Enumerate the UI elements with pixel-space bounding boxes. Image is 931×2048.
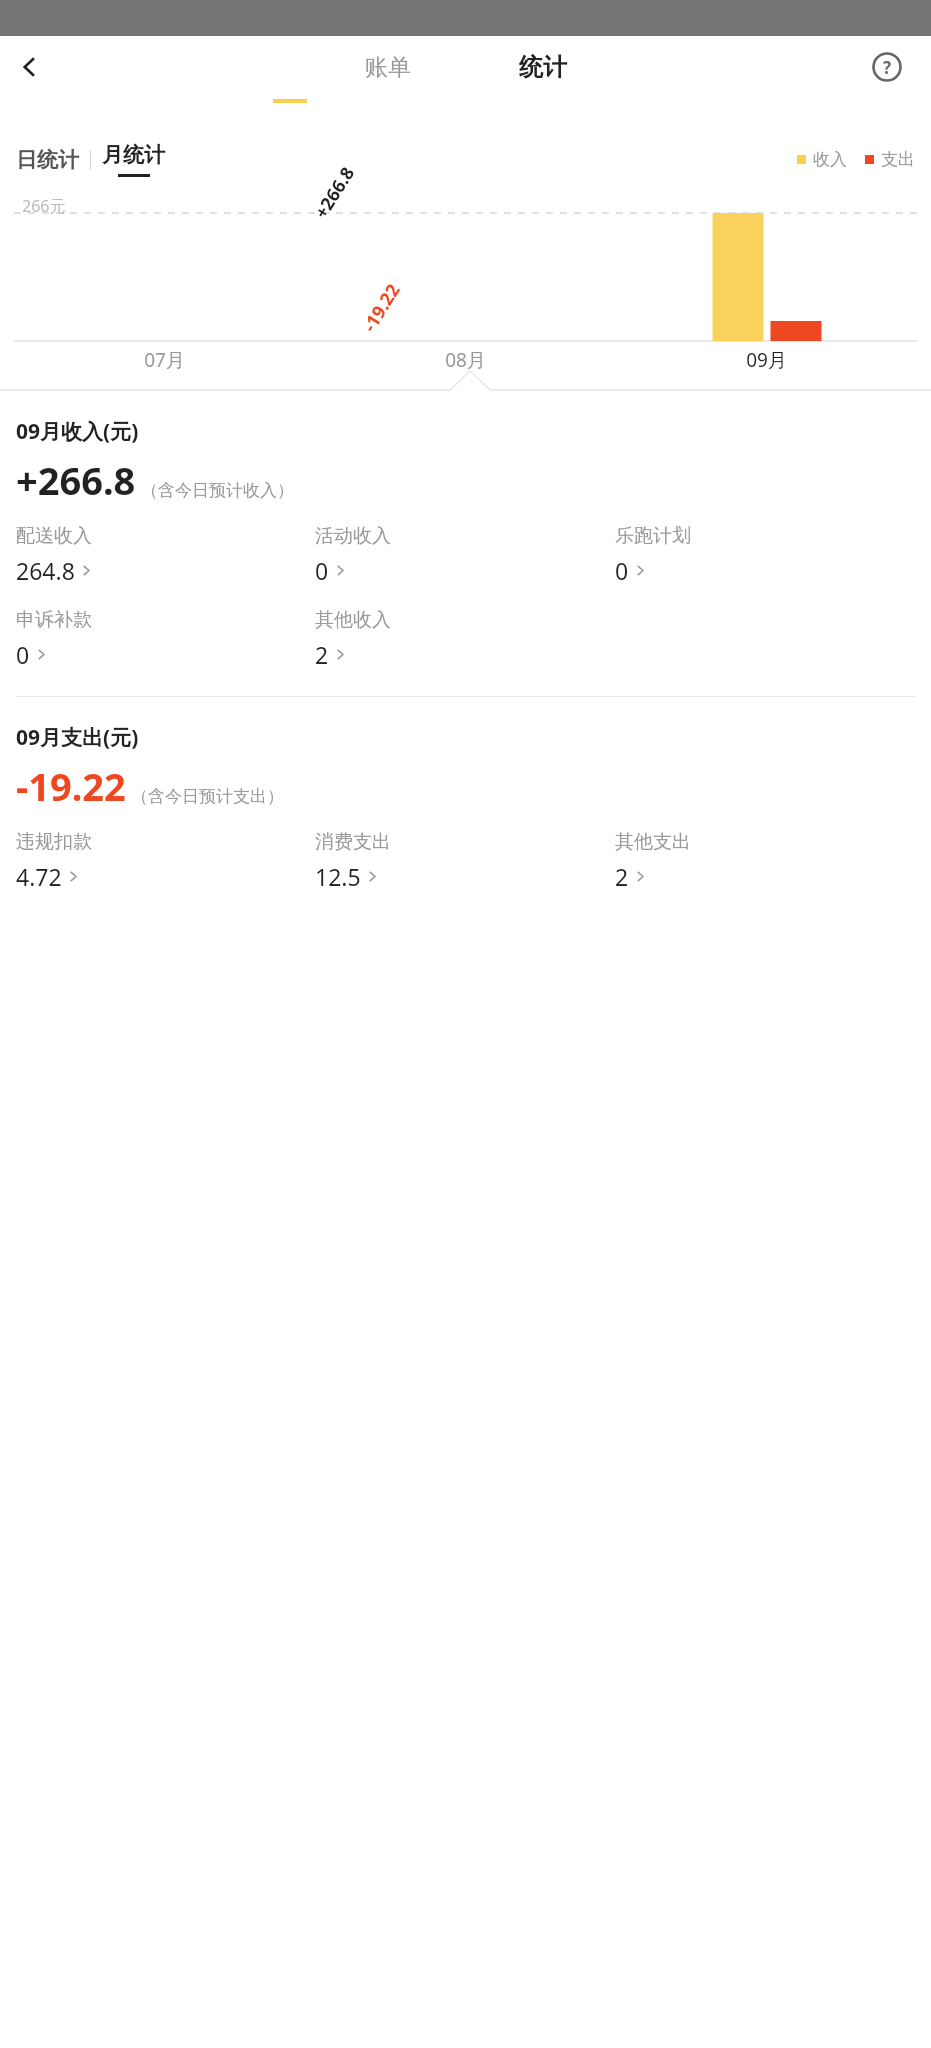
staticText: 日统计 <box>16 147 79 173</box>
staticText: 其他收入 <box>315 608 391 632</box>
staticText: 09月 <box>746 347 787 373</box>
staticText: 活动收入 <box>315 524 391 548</box>
staticText: +266.8 <box>309 162 360 223</box>
button[interactable]: 配送收入 <box>16 524 98 586</box>
staticText: 统计 <box>519 52 567 82</box>
button[interactable]: 其他收入 <box>315 608 397 670</box>
staticText: 266元 <box>22 195 66 217</box>
button[interactable]: 申诉补款 <box>16 608 98 670</box>
staticText: 09月支出(元) <box>16 723 139 752</box>
staticText: 消费支出 <box>315 830 391 854</box>
staticText: 07月 <box>144 347 185 373</box>
button[interactable]: 违规扣款 <box>16 830 98 892</box>
button[interactable]: 乐跑计划 <box>615 524 697 586</box>
staticText: 违规扣款 <box>16 830 92 854</box>
staticText: 09月收入(元) <box>16 417 139 446</box>
button[interactable]: Back <box>6 43 54 91</box>
staticText: 配送收入 <box>16 524 92 548</box>
staticText: 4.72 <box>16 861 62 892</box>
staticText: 收入 <box>813 149 847 170</box>
staticText: 0 <box>16 639 30 670</box>
button[interactable]: 日统计 <box>16 143 79 177</box>
button[interactable]: 消费支出 <box>315 830 397 892</box>
staticText: 08月 <box>445 347 486 373</box>
staticText: 264.8 <box>16 555 75 586</box>
staticText: 支出 <box>881 149 915 170</box>
staticText: -19.22 <box>16 760 126 812</box>
staticText: -19.22 <box>357 278 406 337</box>
staticText: （含今日预计收入） <box>141 480 294 501</box>
staticText: 月统计 <box>102 142 165 168</box>
staticText: ? <box>883 56 892 79</box>
staticText: +266.8 <box>16 454 136 506</box>
button[interactable]: 统计 <box>501 46 585 88</box>
button[interactable]: 其他支出 <box>615 830 697 892</box>
button[interactable]: 月统计 <box>102 142 165 177</box>
staticText: 2 <box>615 861 629 892</box>
staticText: 0 <box>315 555 329 586</box>
staticText: 2 <box>315 639 329 670</box>
button[interactable]: Help <box>865 45 909 89</box>
staticText: 其他支出 <box>615 830 691 854</box>
staticText: 乐跑计划 <box>615 524 691 548</box>
staticText: 0 <box>615 555 629 586</box>
button[interactable]: 活动收入 <box>315 524 397 586</box>
staticText: （含今日预计支出） <box>131 786 284 807</box>
button[interactable]: 账单 <box>347 47 429 88</box>
staticText: 申诉补款 <box>16 608 92 632</box>
staticText: 账单 <box>365 53 411 82</box>
staticText: 12.5 <box>315 861 361 892</box>
